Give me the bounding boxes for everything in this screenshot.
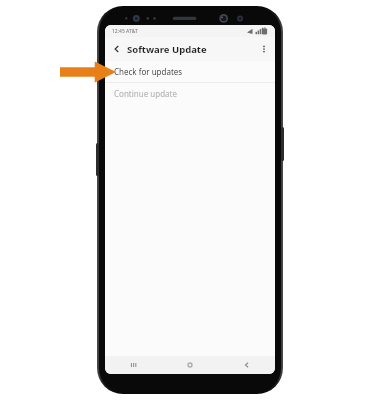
button[interactable]: Check for updates [105,61,275,82]
staticText: Check for updates [114,66,183,77]
staticText: Software Update [127,43,207,56]
button[interactable]: Back [109,41,125,57]
button: Continue update [105,83,275,104]
staticText: 12:45 AT&T [112,28,138,35]
button[interactable]: Recents [105,356,161,374]
staticText: Continue update [114,88,177,99]
button[interactable]: Home [161,356,218,374]
button[interactable]: Back [218,356,275,374]
button[interactable]: More options [256,41,272,57]
